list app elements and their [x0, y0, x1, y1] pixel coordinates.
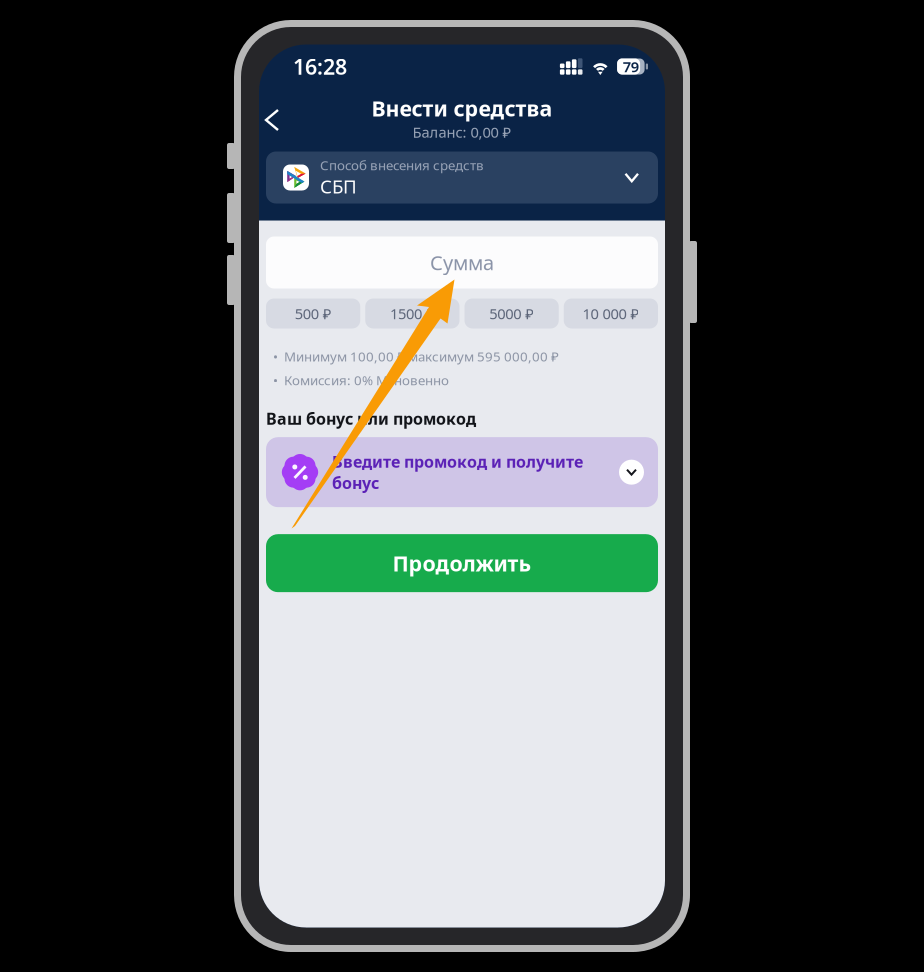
staticText: •: [273, 347, 278, 365]
staticText: Сумма: [430, 249, 494, 276]
staticText: Способ внесения средств: [320, 156, 484, 174]
staticText: Ваш бонус или промокод: [266, 408, 476, 429]
button[interactable]: 10 000 ₽: [564, 298, 658, 328]
staticText: •: [273, 371, 278, 389]
button[interactable]: Способ внесения средств: [266, 151, 658, 203]
staticText: 1500 ₽: [390, 304, 435, 323]
staticText: СБП: [320, 174, 357, 199]
staticText: Внести средства: [371, 94, 552, 122]
staticText: 500 ₽: [295, 304, 332, 323]
staticText: 16:28: [293, 52, 347, 81]
staticText: Баланс: 0,00 ₽: [412, 122, 511, 142]
button[interactable]: Продолжить: [266, 534, 658, 592]
button[interactable]: Введите промокод и получите бонус: [266, 437, 658, 507]
staticText: Минимум 100,00 ₽ максимум 595 000,00 ₽: [284, 347, 559, 365]
staticText: 5000 ₽: [489, 304, 534, 323]
button[interactable]: 5000 ₽: [464, 298, 559, 328]
staticText: Продолжить: [392, 549, 531, 577]
button[interactable]: 1500 ₽: [365, 298, 459, 328]
staticText: 79: [623, 57, 639, 76]
staticText: Введите промокод и получите бонус: [332, 451, 583, 493]
staticText: 10 000 ₽: [582, 304, 639, 323]
button[interactable]: 500 ₽: [266, 298, 360, 328]
button[interactable]: Back: [259, 100, 285, 140]
staticText: Комиссия: 0% Мгновенно: [284, 371, 449, 389]
